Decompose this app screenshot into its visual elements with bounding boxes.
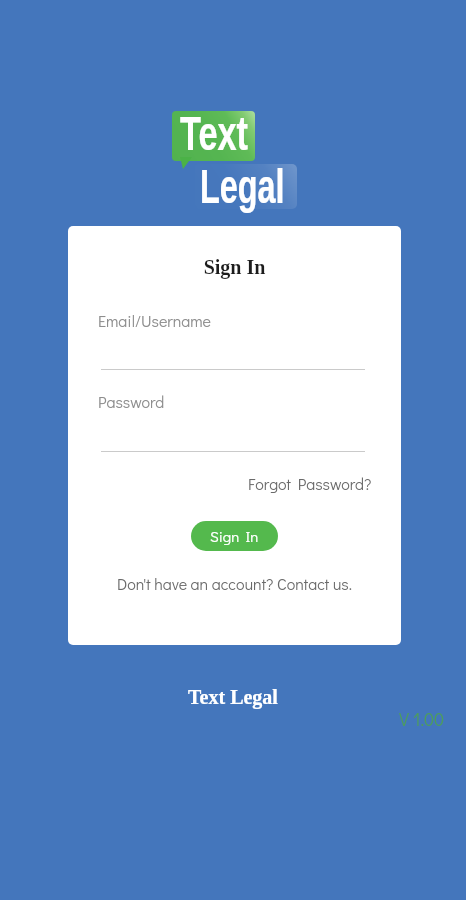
staticText: Forgot Password?	[248, 473, 372, 494]
button[interactable]: Forgot Password?	[220, 473, 372, 494]
staticText: V 1.00	[399, 707, 445, 731]
button[interactable]: Sign In	[191, 521, 278, 551]
staticText: Email/Username	[98, 310, 212, 331]
staticText: Password	[98, 391, 165, 412]
staticText: Sign In	[68, 256, 401, 278]
staticText: Legal	[200, 160, 285, 214]
staticText: Text	[180, 107, 249, 161]
other: Text Legal logo	[172, 111, 302, 213]
button[interactable]: Don't have an account? Contact us.	[68, 573, 401, 594]
staticText: Text Legal	[0, 686, 466, 708]
staticText: Sign In	[210, 526, 259, 546]
